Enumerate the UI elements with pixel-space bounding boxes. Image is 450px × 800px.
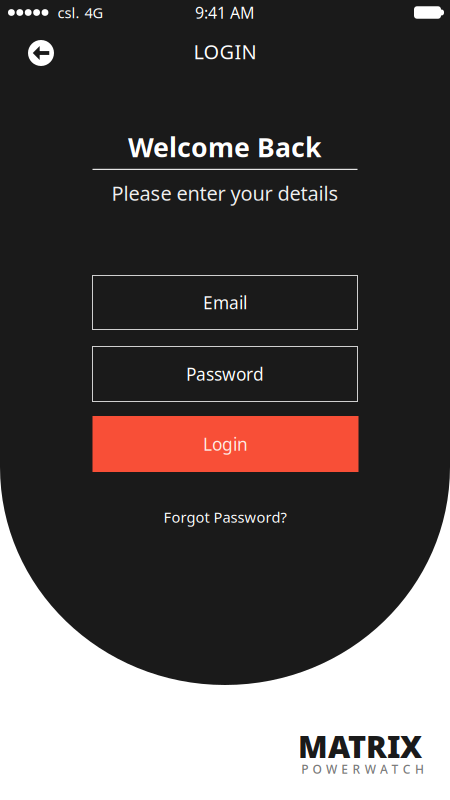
staticText: csl. bbox=[57, 3, 79, 22]
staticText: Login bbox=[203, 432, 248, 455]
staticText: Email bbox=[203, 291, 247, 314]
staticText: Please enter your details bbox=[111, 180, 338, 206]
button[interactable]: Back bbox=[19, 31, 63, 75]
button[interactable]: Forgot Password? bbox=[151, 501, 298, 533]
staticText: 9:41 AM bbox=[195, 2, 255, 23]
button[interactable]: Password bbox=[92, 346, 357, 401]
staticText: Password bbox=[186, 362, 264, 385]
button[interactable]: Login bbox=[92, 416, 358, 472]
staticText: Forgot Password? bbox=[163, 507, 286, 527]
button[interactable]: Email bbox=[92, 275, 357, 329]
staticText: POWERWATCH bbox=[301, 761, 424, 777]
staticText: 4G bbox=[84, 3, 103, 22]
staticText: MATRIX bbox=[298, 726, 422, 766]
staticText: LOGIN bbox=[193, 38, 256, 65]
staticText: Welcome Back bbox=[128, 129, 322, 165]
